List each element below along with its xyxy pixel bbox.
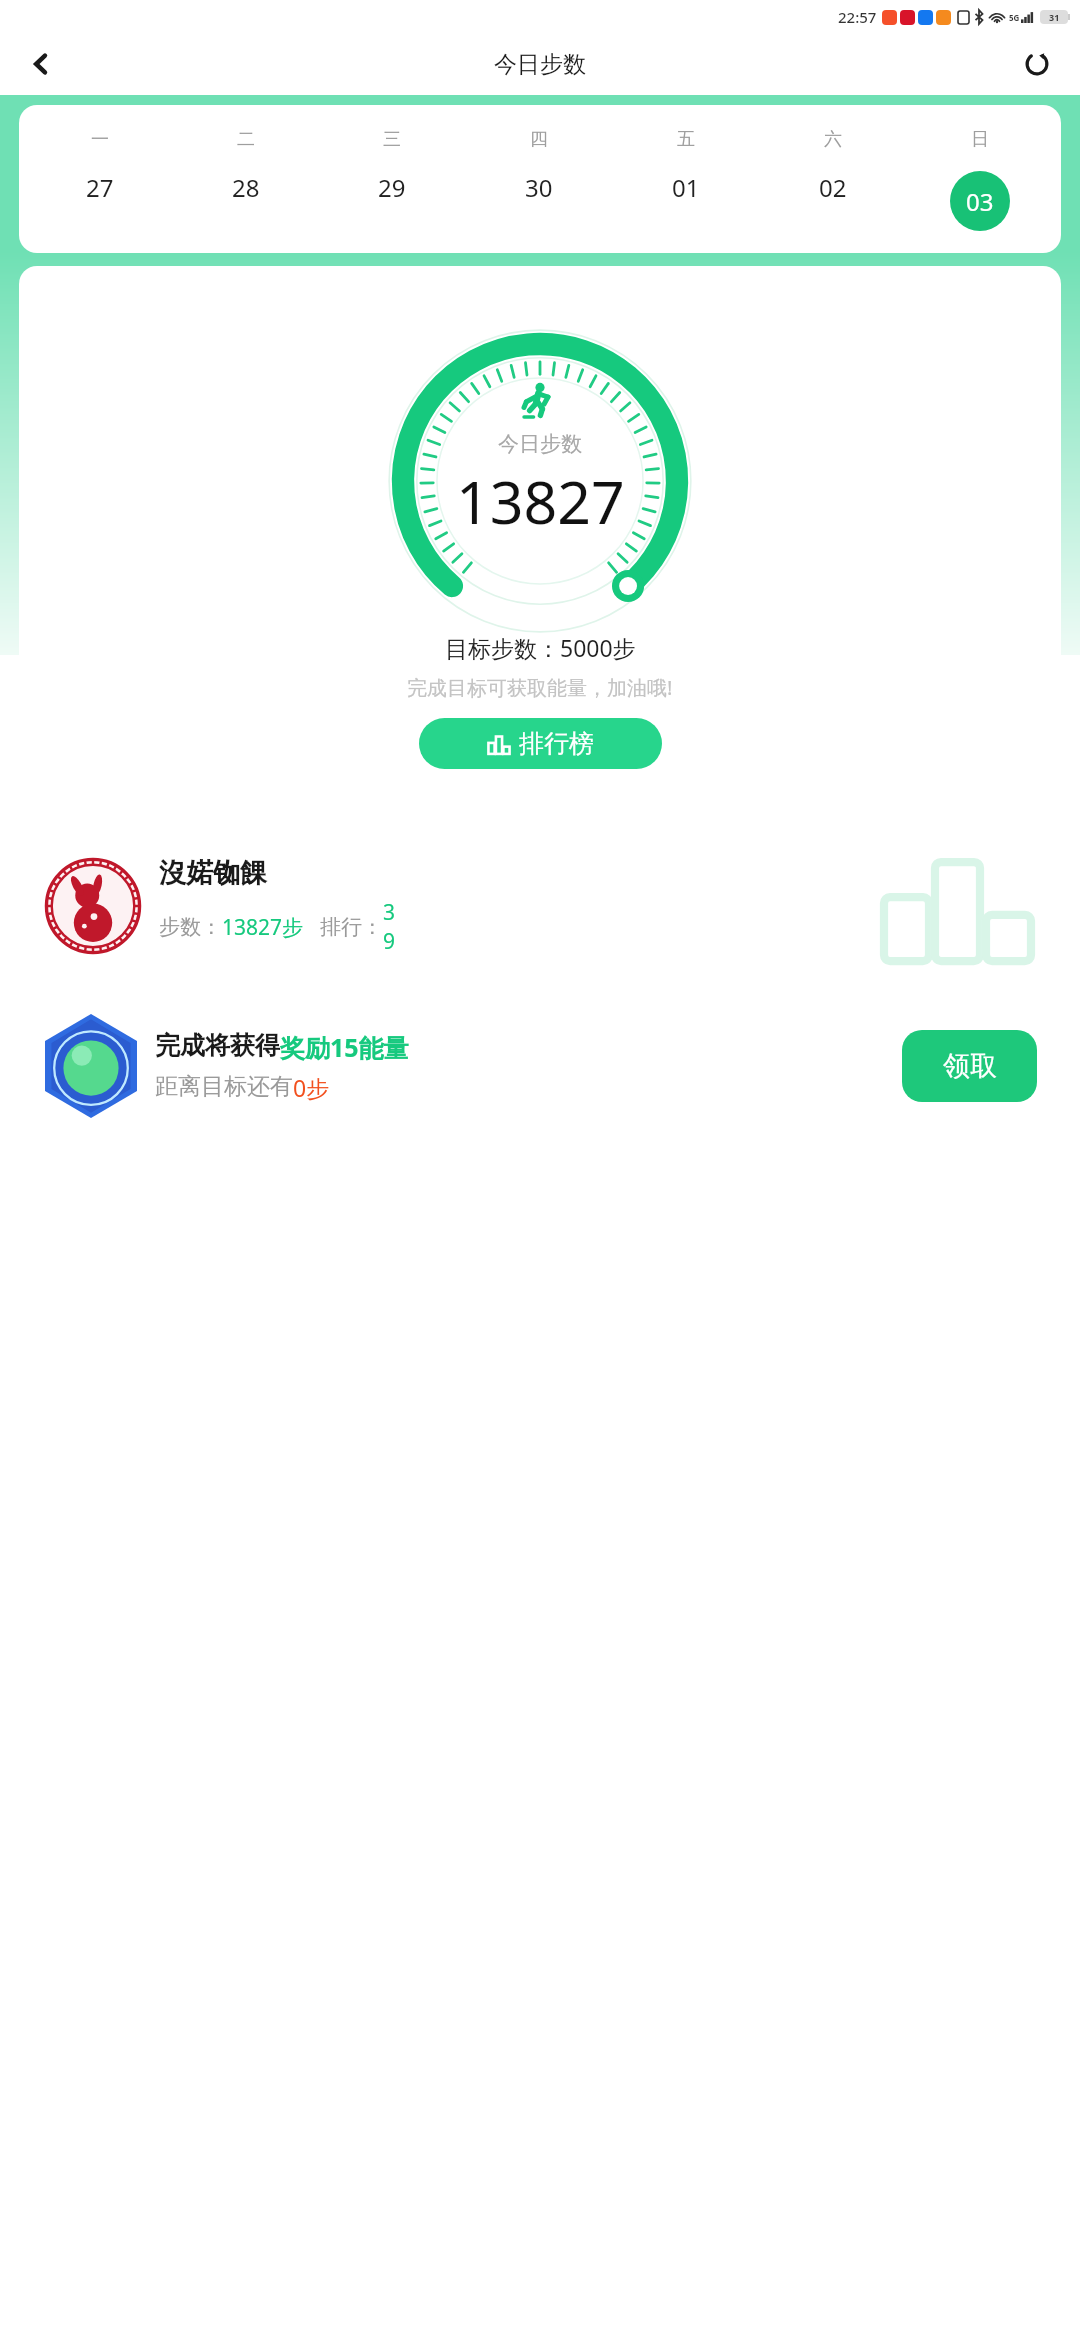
staticText: 三 — [383, 128, 401, 151]
button[interactable]: 03 — [906, 171, 1053, 231]
staticText: 28 — [232, 171, 260, 204]
button[interactable]: 排行榜 — [419, 718, 662, 769]
staticText: 13827步 — [222, 913, 304, 942]
staticText: 13827 — [456, 461, 625, 541]
staticText: 5G — [1009, 12, 1020, 23]
staticText: 日 — [971, 128, 989, 151]
staticText: 今日步数 — [498, 431, 582, 457]
staticText: 完成将获得 — [155, 1030, 280, 1061]
staticText: 领取 — [943, 1049, 997, 1083]
button[interactable]: Back — [18, 41, 64, 87]
staticText: 39 — [383, 898, 397, 956]
staticText: 四 — [530, 128, 548, 151]
staticText: 22:57 — [838, 7, 877, 27]
staticText: 二 — [237, 128, 255, 151]
staticText: 步数： — [159, 914, 222, 940]
staticText: 0步 — [293, 1072, 330, 1103]
staticText: 03 — [966, 185, 994, 218]
staticText: 一 — [91, 128, 109, 151]
staticText: 五 — [677, 128, 695, 151]
button[interactable]: 02 — [759, 171, 906, 204]
button[interactable]: 29 — [319, 171, 465, 204]
staticText: 27 — [86, 171, 114, 204]
button[interactable]: 30 — [465, 171, 612, 204]
button[interactable]: 28 — [173, 171, 319, 204]
button[interactable]: 01 — [612, 171, 759, 204]
staticText: 完成目标可获取能量，加油哦! — [407, 674, 673, 701]
staticText: 目标步数：5000步 — [445, 632, 636, 663]
staticText: 30 — [525, 171, 553, 204]
staticText: 今日步数 — [494, 50, 586, 79]
button[interactable]: 27 — [27, 171, 173, 204]
staticText: 31 — [1049, 11, 1060, 23]
staticText: 奖励15能量 — [280, 1030, 409, 1064]
button[interactable]: 沒婼铷餜 — [19, 831, 1061, 981]
staticText: 沒婼铷餜 — [159, 856, 267, 890]
staticText: 29 — [378, 171, 406, 204]
staticText: 01 — [672, 171, 700, 204]
staticText: 六 — [824, 128, 842, 151]
staticText: 距离目标还有 — [155, 1072, 293, 1101]
staticText: 排行榜 — [519, 728, 594, 759]
staticText: 02 — [819, 171, 847, 204]
button[interactable]: Refresh — [1014, 41, 1060, 87]
staticText: 排行： — [320, 914, 383, 940]
button[interactable]: 领取 — [902, 1030, 1037, 1102]
